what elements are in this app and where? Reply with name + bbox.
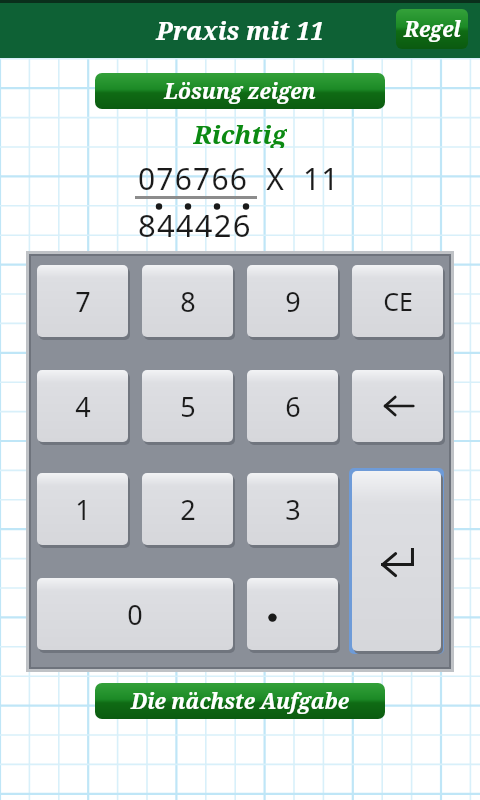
button[interactable]: 5 — [142, 370, 233, 442]
button[interactable]: Lösung zeigen — [95, 73, 385, 109]
staticText: 5 — [180, 388, 196, 425]
staticText: 076766 X 11 — [138, 158, 340, 194]
button[interactable]: Decimal point — [247, 578, 338, 650]
staticText: 844426 — [138, 204, 252, 242]
button[interactable]: 6 — [247, 370, 338, 442]
staticText: Lösung zeigen — [164, 77, 316, 106]
button[interactable]: 0 — [37, 578, 233, 650]
button[interactable]: Regel — [396, 9, 468, 49]
staticText: CE — [383, 284, 413, 318]
button[interactable]: CE — [352, 265, 443, 337]
staticText: 9 — [285, 283, 301, 320]
staticText: Richtig — [193, 116, 287, 148]
staticText: 6 — [285, 388, 301, 425]
staticText: 3 — [285, 491, 301, 528]
button[interactable]: 2 — [142, 473, 233, 545]
button[interactable]: 7 — [37, 265, 128, 337]
button[interactable]: Backspace — [352, 370, 443, 442]
staticText: 0 — [127, 596, 143, 633]
staticText: 4 — [75, 388, 91, 425]
staticText: 2 — [180, 491, 196, 528]
button[interactable]: 8 — [142, 265, 233, 337]
staticText: 8 — [180, 283, 196, 320]
staticText: 1 — [75, 491, 91, 528]
button[interactable]: 9 — [247, 265, 338, 337]
button[interactable]: 1 — [37, 473, 128, 545]
button[interactable]: Die nächste Aufgabe — [95, 683, 385, 719]
button[interactable]: Enter — [352, 471, 441, 651]
staticText: Die nächste Aufgabe — [131, 687, 349, 716]
staticText: Praxis mit 11 — [156, 13, 324, 47]
button[interactable]: 4 — [37, 370, 128, 442]
staticText: Regel — [404, 15, 461, 44]
button[interactable]: 3 — [247, 473, 338, 545]
staticText: 7 — [75, 283, 91, 320]
